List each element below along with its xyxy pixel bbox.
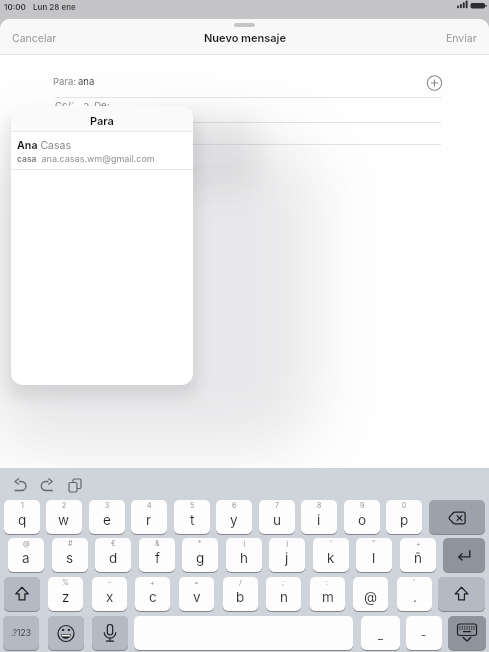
button[interactable]: ; — [266, 577, 301, 612]
staticText: ) — [286, 539, 289, 547]
staticText: t — [190, 512, 195, 528]
staticText: % — [62, 578, 69, 586]
staticText: ; — [282, 578, 285, 586]
staticText: o — [358, 512, 367, 528]
button[interactable] — [92, 616, 128, 651]
staticText: + — [150, 578, 155, 586]
staticText: h — [240, 550, 248, 566]
staticText: u — [273, 512, 281, 528]
staticText: " — [372, 539, 376, 547]
button[interactable]: & — [139, 538, 175, 573]
button[interactable]: @ — [353, 577, 388, 612]
staticText: 8 — [317, 501, 322, 509]
staticText: j — [285, 550, 289, 566]
staticText: k — [327, 550, 335, 566]
button[interactable]: 2 — [46, 500, 82, 535]
button[interactable]: ) — [269, 538, 305, 573]
staticText: € — [111, 539, 116, 547]
staticText: Para: — [53, 76, 77, 87]
staticText: Enviar — [446, 32, 477, 45]
staticText: 0 — [402, 501, 407, 509]
button[interactable]: - — [92, 577, 127, 612]
button[interactable] — [62, 474, 87, 499]
staticText: l — [372, 550, 376, 566]
staticText: 10:00 — [4, 2, 26, 12]
button[interactable] — [443, 538, 485, 573]
button[interactable] — [53, 69, 423, 97]
staticText: w — [58, 512, 70, 528]
staticText: : — [326, 578, 329, 586]
button[interactable] — [429, 500, 485, 535]
button[interactable] — [424, 72, 446, 94]
button[interactable]: 1 — [4, 500, 40, 535]
button[interactable]: / — [223, 577, 258, 612]
staticText: z — [62, 589, 70, 605]
staticText: ñ — [414, 550, 422, 566]
staticText: e — [103, 512, 111, 528]
staticText: p — [400, 512, 409, 528]
button[interactable] — [134, 616, 353, 651]
button[interactable]: 4 — [131, 500, 167, 535]
button[interactable] — [48, 616, 84, 651]
staticText: Nuevo mensaje — [204, 31, 286, 44]
button[interactable]: % — [48, 577, 83, 612]
staticText: x — [106, 589, 114, 605]
button[interactable]: ' — [397, 577, 432, 612]
button[interactable]: 0 — [386, 500, 422, 535]
staticText: + — [416, 539, 421, 547]
staticText: y — [230, 512, 238, 528]
staticText: Cancelar — [12, 32, 57, 45]
staticText: g — [196, 550, 205, 566]
staticText: ana — [78, 76, 95, 87]
button[interactable]: 3 — [89, 500, 125, 535]
staticText: 1 — [21, 501, 24, 509]
staticText: m — [322, 589, 334, 605]
button[interactable]: * — [182, 538, 218, 573]
button[interactable]: Enviar — [442, 27, 473, 40]
button[interactable]: " — [356, 538, 392, 573]
button[interactable] — [8, 474, 33, 499]
staticText: = — [194, 578, 199, 586]
staticText: 9 — [360, 501, 365, 509]
button[interactable]: Ana Casas — [11, 132, 193, 169]
staticText: casa ana.casas.wm@gmail.com — [17, 153, 155, 164]
button[interactable]: Cancelar — [8, 27, 53, 40]
button[interactable]: ( — [226, 538, 262, 573]
button[interactable]: 6 — [216, 500, 252, 535]
staticText: r — [146, 512, 152, 528]
staticText: ' — [413, 578, 416, 586]
button[interactable] — [448, 616, 486, 651]
button[interactable] — [34, 474, 59, 499]
staticText: 7 — [275, 501, 279, 509]
button[interactable]: _ — [361, 616, 400, 651]
staticText: . — [413, 589, 417, 605]
staticText: c — [149, 589, 157, 605]
button[interactable]: 5 — [174, 500, 210, 535]
button[interactable]: @ — [8, 538, 44, 573]
button[interactable]: + — [400, 538, 436, 573]
staticText: v — [193, 589, 201, 605]
button[interactable]: = — [179, 577, 214, 612]
staticText: 3 — [105, 501, 110, 509]
button[interactable]: € — [95, 538, 131, 573]
staticText: 6 — [232, 501, 237, 509]
staticText: _ — [378, 628, 384, 641]
button[interactable] — [4, 577, 40, 612]
staticText: Para — [90, 114, 114, 127]
staticText: s — [66, 550, 74, 566]
button[interactable]: 8 — [301, 500, 337, 535]
staticText: / — [239, 578, 242, 586]
button[interactable]: ' — [313, 538, 349, 573]
staticText: Ana Casas — [17, 139, 71, 152]
button[interactable]: - — [406, 616, 442, 651]
staticText: - — [108, 578, 112, 586]
button[interactable]: 7 — [259, 500, 295, 535]
button[interactable]: .?123 — [3, 616, 39, 651]
button[interactable] — [438, 577, 485, 612]
staticText: @ — [23, 539, 30, 547]
button[interactable]: # — [52, 538, 88, 573]
button[interactable]: : — [310, 577, 345, 612]
button[interactable]: + — [135, 577, 170, 612]
button[interactable]: 9 — [344, 500, 380, 535]
staticText: * — [198, 539, 202, 547]
